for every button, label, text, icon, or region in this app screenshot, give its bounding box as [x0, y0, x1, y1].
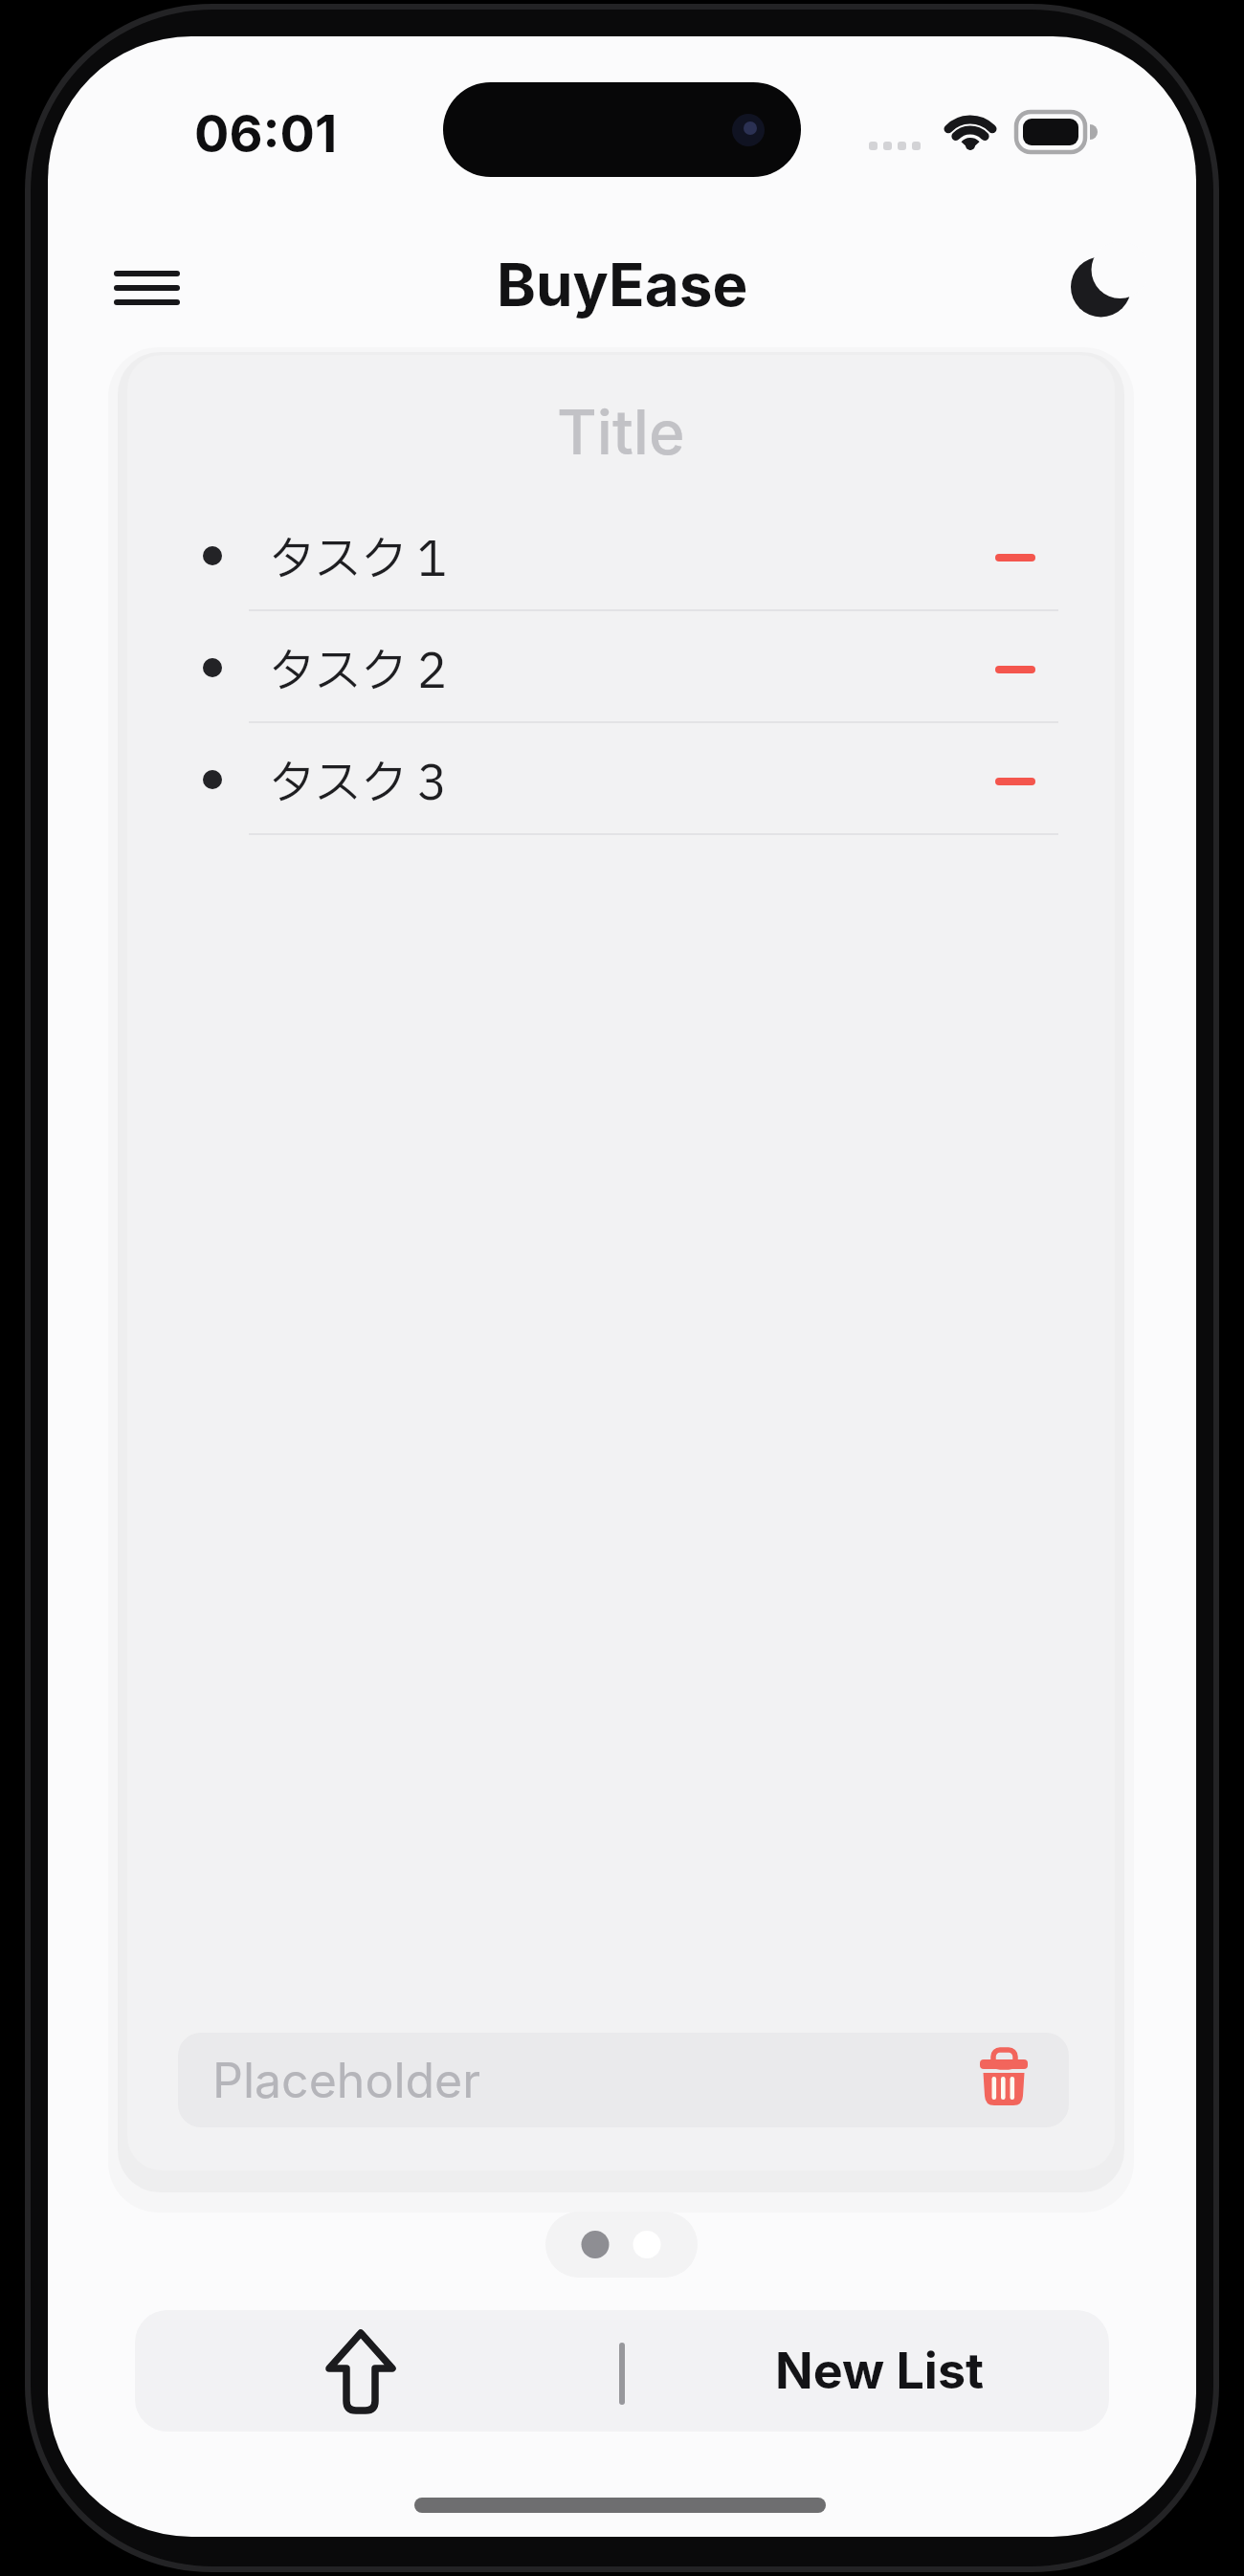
- button[interactable]: タスク 2: [185, 620, 1057, 716]
- button[interactable]: [135, 2310, 613, 2432]
- button[interactable]: New List: [650, 2310, 1109, 2432]
- button[interactable]: タスク 3: [185, 732, 1057, 827]
- button[interactable]: [1062, 249, 1148, 335]
- staticText: タスク 3: [268, 749, 446, 821]
- button[interactable]: [107, 256, 188, 318]
- staticText: BuyEase: [497, 249, 748, 320]
- button[interactable]: Placeholder: [178, 2033, 1069, 2127]
- button[interactable]: [976, 758, 1055, 805]
- button[interactable]: [976, 646, 1055, 694]
- button[interactable]: [545, 2212, 698, 2278]
- staticText: タスク 1: [268, 525, 446, 597]
- button[interactable]: タスク 1: [185, 508, 1057, 604]
- staticText: Title: [557, 395, 685, 469]
- staticText: Placeholder: [212, 2052, 481, 2109]
- staticText: New List: [775, 2341, 985, 2401]
- button[interactable]: [976, 534, 1055, 582]
- button[interactable]: [980, 2048, 1037, 2111]
- staticText: タスク 2: [268, 637, 446, 709]
- staticText: 06:01: [194, 102, 338, 165]
